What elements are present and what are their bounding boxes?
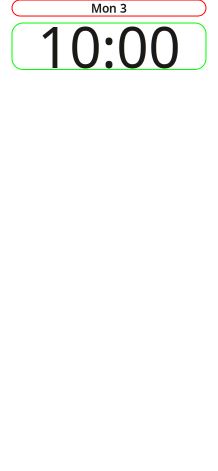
staticText: Mon 3 <box>91 0 127 16</box>
staticText: 10:00 <box>37 9 180 83</box>
